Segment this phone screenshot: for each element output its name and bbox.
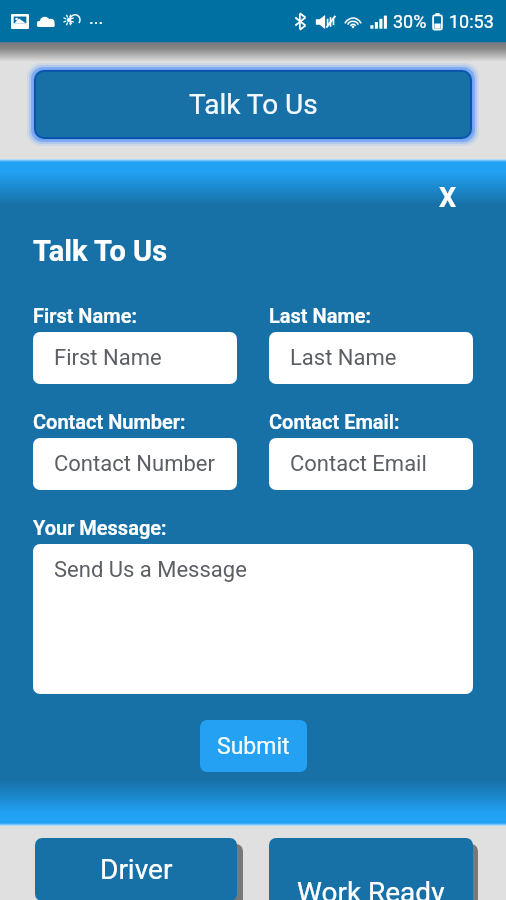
- staticText: X: [439, 182, 457, 214]
- staticText: Contact Email:: [269, 410, 400, 433]
- staticText: Talk To Us: [189, 88, 318, 121]
- staticText: Submit: [217, 733, 290, 760]
- button[interactable]: Close dialog: [429, 179, 467, 217]
- button[interactable]: Send Us a Message: [33, 544, 473, 694]
- button[interactable]: Contact Email: [269, 438, 473, 490]
- staticText: ...: [89, 7, 104, 28]
- staticText: Last Name:: [269, 304, 372, 327]
- button[interactable]: Driver: [35, 838, 237, 900]
- button[interactable]: Contact Number: [33, 438, 237, 490]
- staticText: Work Ready: [297, 876, 445, 900]
- button[interactable]: Last Name: [269, 332, 473, 384]
- staticText: Contact Email: [290, 451, 427, 477]
- staticText: First Name: [54, 345, 162, 371]
- staticText: Last Name: [290, 345, 397, 371]
- staticText: First Name:: [33, 304, 137, 327]
- staticText: Driver: [100, 853, 173, 886]
- button[interactable]: Work Ready: [269, 838, 473, 900]
- button[interactable]: First Name: [33, 332, 237, 384]
- staticText: 30%: [393, 11, 427, 32]
- staticText: Talk To Us: [33, 234, 168, 268]
- staticText: Send Us a Message: [54, 557, 247, 583]
- button[interactable]: Submit: [200, 720, 307, 772]
- button[interactable]: Talk To Us: [36, 72, 470, 137]
- staticText: Contact Number: [54, 451, 215, 477]
- staticText: Contact Number:: [33, 410, 186, 433]
- staticText: 10:53: [449, 11, 494, 32]
- staticText: Your Message:: [33, 516, 167, 539]
